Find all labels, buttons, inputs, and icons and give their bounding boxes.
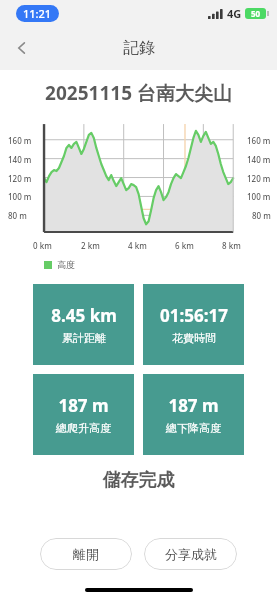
button[interactable]: 187 m [143, 374, 244, 455]
staticText: 離開 [73, 546, 99, 562]
staticText: 80 m [8, 210, 27, 221]
staticText: 儲存完成 [0, 469, 277, 492]
staticText: 187 m [58, 394, 109, 417]
staticText: 花費時間 [172, 331, 216, 345]
staticText: 8.45 km [51, 304, 117, 327]
staticText: 0 km [33, 240, 52, 251]
staticText: 6 km [175, 240, 194, 251]
staticText: 01:56:17 [160, 304, 228, 327]
staticText: 160 m [8, 135, 32, 146]
staticText: 140 m [247, 154, 271, 165]
staticText: 140 m [8, 154, 32, 165]
staticText: 8 km [222, 240, 241, 251]
staticText: 50 [251, 8, 261, 19]
button[interactable]: 分享成就 [144, 538, 237, 570]
staticText: 120 m [247, 173, 271, 184]
staticText: 80 m [252, 210, 271, 221]
staticText: 總下降高度 [166, 421, 221, 435]
staticText: 160 m [247, 135, 271, 146]
button[interactable]: 離開 [40, 538, 132, 570]
button[interactable]: 8.45 km [33, 284, 134, 365]
staticText: 累計距離 [62, 331, 106, 345]
button[interactable]: 187 m [33, 374, 134, 455]
staticText: 2 km [81, 240, 100, 251]
staticText: 11:21 [23, 6, 52, 21]
staticText: 100 m [247, 191, 271, 202]
button[interactable]: 01:56:17 [143, 284, 244, 365]
staticText: 4 km [128, 240, 147, 251]
button[interactable]: Back [0, 26, 44, 70]
staticText: 分享成就 [165, 546, 217, 562]
staticText: 總爬升高度 [56, 421, 111, 435]
staticText: 記錄 [123, 38, 155, 58]
staticText: 20251115 台南大尖山 [0, 80, 277, 106]
staticText: 187 m [168, 394, 219, 417]
staticText: 120 m [8, 173, 32, 184]
staticText: 4G [227, 6, 242, 21]
staticText: 高度 [57, 259, 75, 270]
staticText: 100 m [8, 191, 32, 202]
